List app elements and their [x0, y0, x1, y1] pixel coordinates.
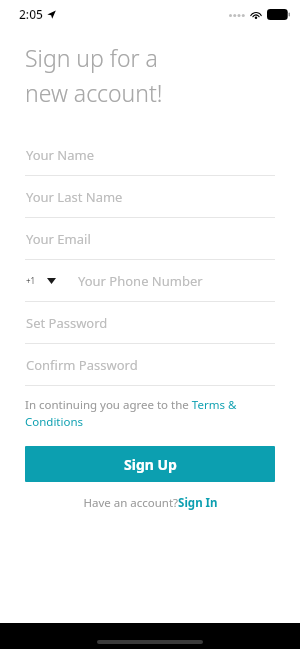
staticText: Confirm Password	[26, 356, 138, 374]
button[interactable]: Sign Up	[25, 446, 275, 482]
button[interactable]: Your Last Name	[0, 176, 300, 218]
button[interactable]: In continuing you agree to the Terms & C…	[25, 397, 275, 429]
button[interactable]: Your Name	[0, 134, 300, 176]
staticText: Sign up for a	[25, 42, 158, 73]
button[interactable]: +1	[0, 260, 300, 302]
staticText: Sign Up	[124, 455, 177, 474]
staticText: new account!	[25, 77, 163, 108]
staticText: Your Name	[26, 146, 95, 164]
button[interactable]: Have an account?Sign In	[83, 495, 218, 511]
staticText: Your Phone Number	[78, 272, 203, 290]
button[interactable]: Confirm Password	[0, 344, 300, 386]
staticText: Set Password	[26, 314, 108, 332]
staticText: +1	[26, 275, 36, 286]
staticText: 2:05	[19, 6, 43, 22]
button[interactable]: Your Email	[0, 218, 300, 260]
staticText: Your Last Name	[26, 188, 123, 206]
staticText: In continuing you agree to the Terms & C…	[25, 397, 275, 429]
staticText: Have an account?Sign In	[83, 495, 218, 511]
other: Select country code	[47, 278, 56, 284]
staticText: Your Email	[26, 230, 91, 248]
button[interactable]: Set Password	[0, 302, 300, 344]
